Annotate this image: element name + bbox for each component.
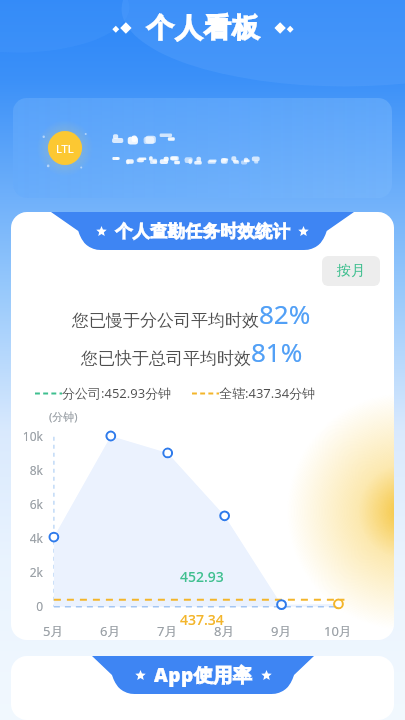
staticText: 7月: [157, 622, 178, 640]
staticText: 5月: [43, 622, 64, 640]
staticText: 6月: [100, 622, 121, 640]
button[interactable]: 按月: [322, 256, 380, 286]
staticText: 82%: [259, 296, 311, 331]
staticText: 10月: [324, 622, 352, 640]
staticText: 您已快于总司平均时效: [81, 348, 251, 369]
staticText: LTL: [56, 141, 74, 156]
staticText: 81%: [251, 334, 303, 369]
staticText: 9月: [271, 622, 292, 640]
staticText: 8k: [11, 462, 43, 478]
staticText: 8月: [214, 622, 235, 640]
staticText: 按月: [337, 262, 365, 280]
staticText: 4k: [11, 530, 43, 546]
staticText: 2k: [11, 564, 43, 580]
staticText: App使用率: [154, 662, 253, 688]
staticText: 437.34: [180, 610, 224, 629]
staticText: 452.93: [180, 567, 224, 586]
button[interactable]: LTL: [13, 98, 392, 198]
staticText: 0: [11, 598, 43, 614]
staticText: 个人看板: [146, 11, 260, 45]
staticText: 全辖:437.34分钟: [219, 384, 316, 402]
staticText: 10k: [11, 428, 43, 444]
staticText: 您已慢于分公司平均时效: [72, 310, 259, 331]
staticText: (分钟): [49, 409, 78, 424]
staticText: 分公司:452.93分钟: [62, 384, 172, 402]
staticText: 个人查勘任务时效统计: [115, 221, 290, 242]
staticText: 6k: [11, 496, 43, 512]
